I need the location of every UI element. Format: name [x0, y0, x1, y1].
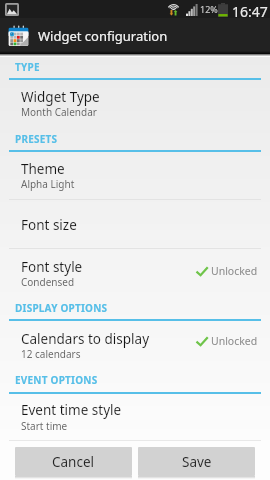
staticText: 12%: [200, 3, 218, 15]
staticText: Font size: [21, 216, 77, 234]
button[interactable]: [0, 319, 270, 377]
button[interactable]: [0, 150, 270, 200]
staticText: Widget configuration: [38, 27, 168, 45]
staticText: TYPE: [15, 60, 40, 74]
staticText: EVENT OPTIONS: [15, 373, 98, 387]
button[interactable]: [0, 392, 270, 440]
other: App icon: [8, 25, 29, 47]
staticText: Unlocked: [211, 264, 258, 278]
button[interactable]: Cancel: [15, 447, 132, 476]
staticText: Condensed: [21, 275, 75, 289]
staticText: Alpha Light: [21, 177, 75, 191]
staticText: Calendars to display: [21, 330, 150, 348]
staticText: 12 calendars: [21, 347, 81, 361]
button[interactable]: [0, 248, 270, 303]
staticText: Unlocked: [211, 334, 258, 348]
staticText: Start time: [21, 419, 68, 433]
staticText: DISPLAY OPTIONS: [15, 301, 108, 315]
staticText: Month Calendar: [21, 105, 97, 119]
staticText: Event time style: [21, 401, 122, 419]
staticText: Save: [182, 453, 212, 471]
staticText: Theme: [21, 160, 65, 178]
staticText: Font style: [21, 258, 83, 276]
staticText: Widget Type: [21, 88, 100, 106]
staticText: PRESETS: [15, 132, 58, 146]
staticText: 16:47: [232, 2, 268, 20]
button[interactable]: Save: [138, 447, 255, 476]
button[interactable]: [0, 199, 270, 248]
staticText: Cancel: [52, 453, 95, 471]
button[interactable]: [0, 78, 270, 134]
